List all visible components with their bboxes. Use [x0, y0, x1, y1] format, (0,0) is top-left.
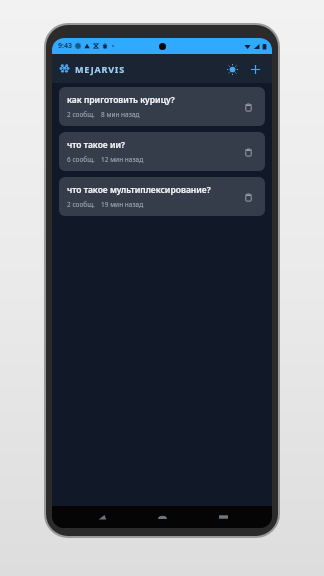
staticText: 2 сообщ.: [67, 110, 95, 119]
button[interactable]: Recent apps: [212, 506, 234, 528]
button[interactable]: что такое ии?: [59, 132, 265, 171]
button[interactable]: как приготовить курицу?: [59, 87, 265, 126]
button[interactable]: что такое мультиплексирование?: [59, 177, 265, 216]
button[interactable]: New chat: [245, 59, 265, 79]
button[interactable]: Delete conversation: [237, 186, 259, 208]
staticText: что такое ии?: [67, 139, 125, 151]
staticText: MEJARVIS: [75, 63, 125, 75]
staticText: 6 сообщ.: [67, 155, 95, 164]
staticText: 12 мин назад: [101, 155, 144, 164]
staticText: что такое мультиплексирование?: [67, 184, 211, 196]
button[interactable]: Home: [151, 506, 173, 528]
staticText: 2 сообщ.: [67, 200, 95, 209]
staticText: 9:43: [58, 41, 72, 51]
button[interactable]: Back: [91, 506, 113, 528]
button[interactable]: Delete conversation: [237, 96, 259, 118]
staticText: 19 мин назад: [101, 200, 144, 209]
button[interactable]: Delete conversation: [237, 141, 259, 163]
staticText: 8 мин назад: [101, 110, 140, 119]
button[interactable]: Toggle theme: [222, 59, 242, 79]
staticText: как приготовить курицу?: [67, 94, 175, 106]
